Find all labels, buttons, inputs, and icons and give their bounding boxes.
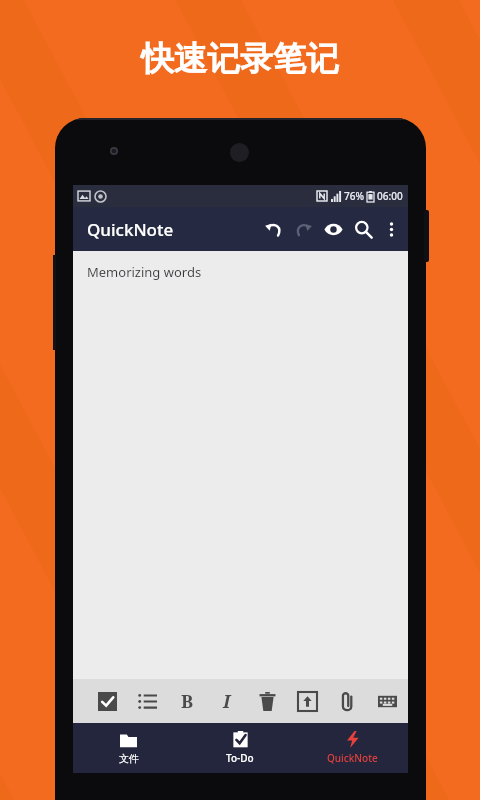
- button[interactable]: Memorizing words: [73, 251, 408, 679]
- button[interactable]: Preview: [318, 214, 348, 244]
- button[interactable]: I: [207, 681, 247, 721]
- staticText: QuickNote: [327, 751, 378, 765]
- staticText: B: [181, 689, 194, 714]
- button[interactable]: Undo: [258, 214, 288, 244]
- staticText: QuickNote: [87, 218, 174, 241]
- button[interactable]: Attach: [327, 681, 367, 721]
- button[interactable]: Keyboard: [367, 681, 407, 721]
- button[interactable]: QuickNote: [87, 218, 174, 241]
- button[interactable]: Export: [287, 681, 327, 721]
- button[interactable]: To-Do: [184, 723, 296, 773]
- button[interactable]: Delete: [247, 681, 287, 721]
- staticText: 76%: [344, 189, 364, 203]
- button[interactable]: Redo: [288, 214, 318, 244]
- staticText: 文件: [119, 752, 139, 765]
- button[interactable]: More options: [378, 216, 404, 242]
- button[interactable]: Search: [348, 214, 378, 244]
- button[interactable]: B: [167, 681, 207, 721]
- staticText: To-Do: [226, 751, 254, 765]
- button[interactable]: Bullet list: [127, 681, 167, 721]
- staticText: Memorizing words: [87, 263, 202, 281]
- button[interactable]: QuickNote: [296, 723, 408, 773]
- button[interactable]: Checklist: [87, 681, 127, 721]
- staticText: 06:00: [377, 189, 403, 203]
- staticText: I: [223, 689, 231, 714]
- button[interactable]: 文件: [73, 723, 184, 773]
- staticText: 快速记录笔记: [141, 38, 339, 80]
